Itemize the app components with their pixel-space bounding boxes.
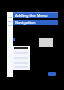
staticText: Adding the Menu — [15, 13, 48, 18]
button[interactable]: Navigation — [13, 20, 58, 25]
button[interactable]: Adding the Menu — [13, 12, 58, 18]
staticText: Navigation — [15, 20, 36, 25]
